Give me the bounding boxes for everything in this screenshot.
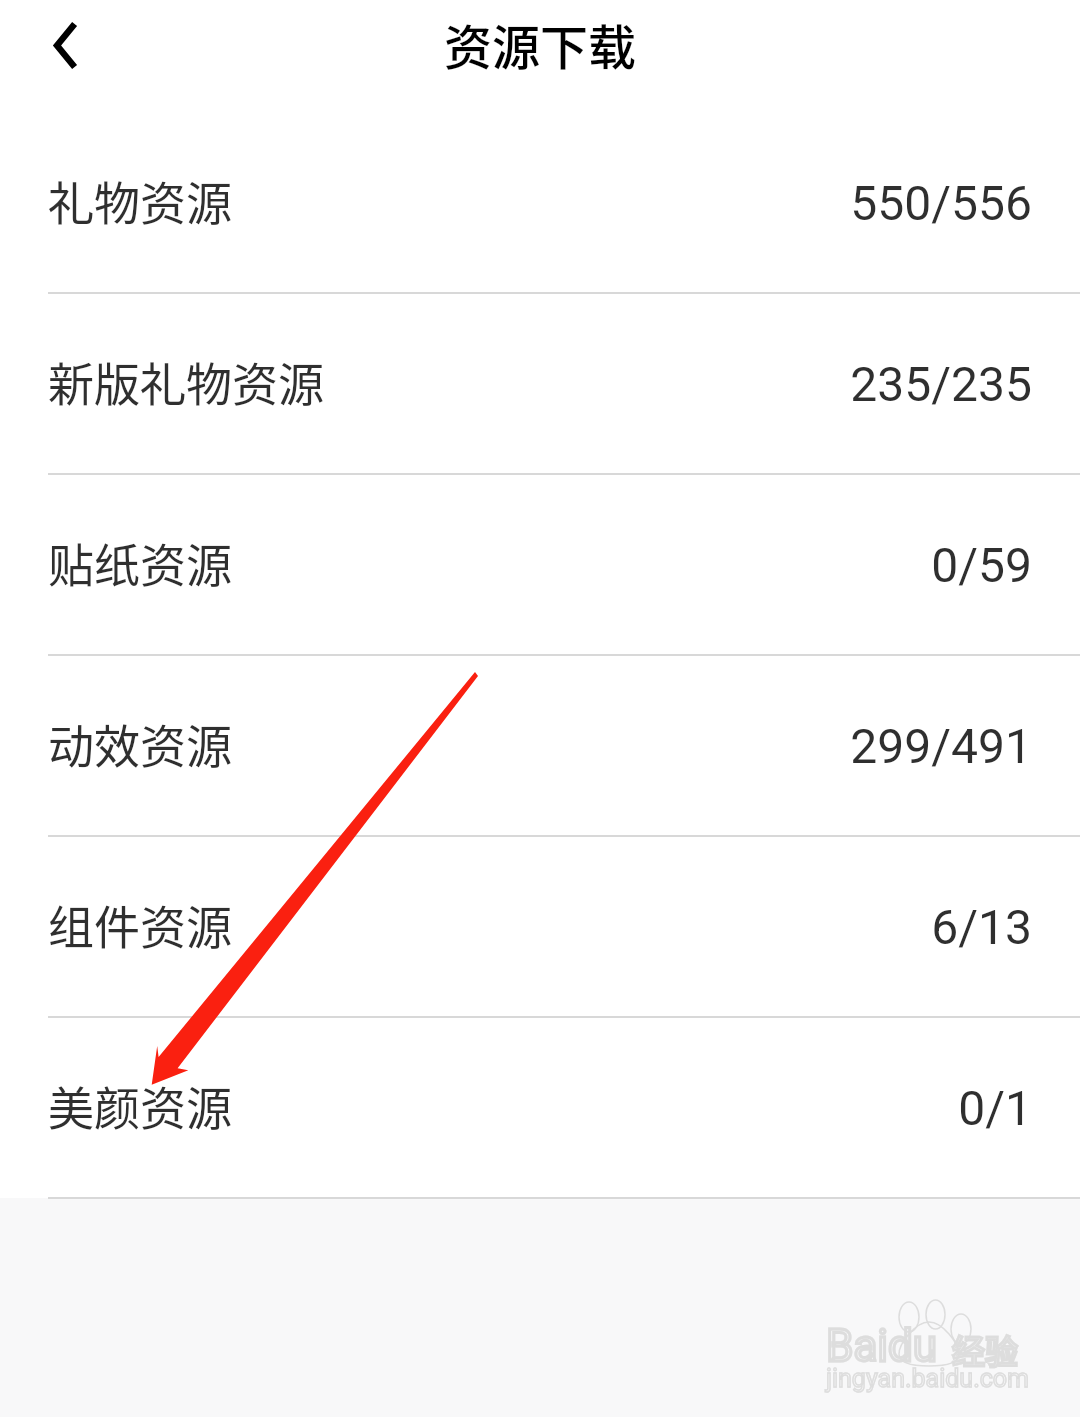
button[interactable]: 组件资源 xyxy=(0,835,1080,1016)
staticText: 299/491 xyxy=(850,718,1032,774)
staticText: 新版礼物资源 xyxy=(48,348,324,415)
staticText: 组件资源 xyxy=(48,891,232,958)
button[interactable]: Back xyxy=(0,0,130,91)
button[interactable]: 动效资源 xyxy=(0,654,1080,835)
staticText: 贴纸资源 xyxy=(48,529,232,596)
staticText: 6/13 xyxy=(931,899,1032,955)
button[interactable]: 新版礼物资源 xyxy=(0,292,1080,473)
staticText: 经验 xyxy=(952,1326,1018,1374)
staticText: 动效资源 xyxy=(48,710,232,777)
staticText: jingyan.baidu.com xyxy=(826,1364,1030,1393)
staticText: 礼物资源 xyxy=(48,167,232,234)
staticText: 美颜资源 xyxy=(48,1072,232,1139)
button[interactable]: 礼物资源 xyxy=(0,111,1080,292)
staticText: 0/59 xyxy=(931,537,1032,593)
button[interactable]: 美颜资源 xyxy=(0,1016,1080,1197)
staticText: 550/556 xyxy=(850,175,1032,231)
staticText: 0/1 xyxy=(958,1080,1032,1136)
staticText: 235/235 xyxy=(850,356,1032,412)
button[interactable]: 贴纸资源 xyxy=(0,473,1080,654)
staticText: Baidu xyxy=(826,1320,938,1372)
staticText: 资源下载 xyxy=(444,9,637,79)
